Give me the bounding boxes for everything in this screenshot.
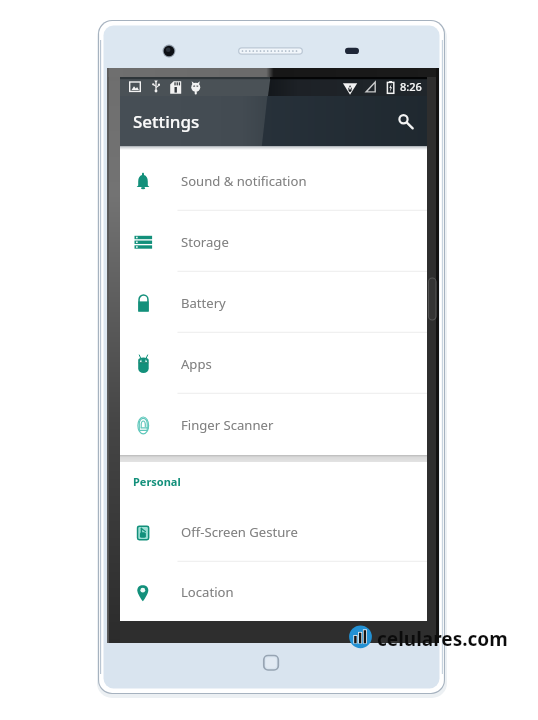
staticText: Off-Screen Gesture [181, 523, 298, 541]
button[interactable]: Location [120, 562, 427, 621]
staticText: 8:26 [400, 79, 422, 94]
button[interactable]: Search [394, 106, 424, 136]
button[interactable]: Off-Screen Gesture [120, 501, 427, 562]
staticText: Finger Scanner [181, 416, 274, 434]
staticText: celulares.com [377, 626, 508, 652]
staticText: Settings [133, 110, 200, 133]
staticText: Storage [181, 233, 229, 251]
button[interactable]: Apps [120, 333, 427, 394]
staticText: Battery [181, 294, 226, 312]
staticText: Personal [133, 474, 181, 489]
button[interactable]: Sound & notification [120, 150, 427, 211]
button[interactable]: Storage [120, 211, 427, 272]
button[interactable]: Finger Scanner [120, 394, 427, 455]
button[interactable]: Battery [120, 272, 427, 333]
staticText: Location [181, 583, 234, 601]
staticText: Apps [181, 355, 212, 373]
staticText: Sound & notification [181, 172, 307, 190]
